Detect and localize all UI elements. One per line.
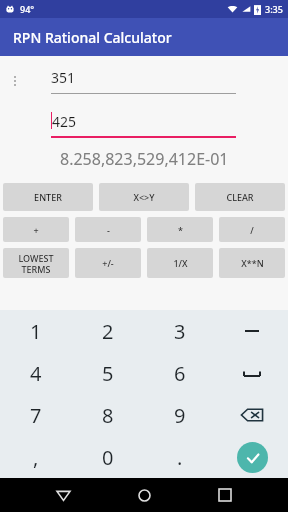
- button[interactable]: 425: [51, 112, 236, 138]
- button[interactable]: Dash: [216, 310, 288, 352]
- button[interactable]: *: [147, 217, 213, 242]
- staticText: 8.258,823,529,412E-01: [60, 148, 229, 170]
- staticText: ENTER: [34, 191, 62, 203]
- staticText: 5: [102, 360, 114, 387]
- staticText: 7: [30, 402, 42, 429]
- button[interactable]: +: [3, 217, 69, 242]
- staticText: ,: [33, 444, 39, 471]
- staticText: 1/X: [173, 257, 188, 269]
- staticText: 6: [174, 360, 186, 387]
- button[interactable]: Recents: [207, 478, 243, 512]
- staticText: .: [177, 444, 183, 471]
- staticText: 94°: [20, 3, 35, 15]
- button[interactable]: 4: [0, 352, 72, 394]
- staticText: 1: [30, 318, 42, 345]
- button[interactable]: 1: [0, 310, 72, 352]
- staticText: +: [33, 224, 39, 236]
- staticText: RPN Rational Calculator: [13, 28, 172, 47]
- button[interactable]: +/-: [75, 248, 141, 278]
- staticText: 9: [174, 402, 186, 429]
- button[interactable]: 0: [72, 436, 144, 478]
- staticText: LOWEST TERMS: [18, 252, 54, 275]
- button[interactable]: X<>Y: [99, 183, 189, 211]
- button[interactable]: 1/X: [147, 248, 213, 278]
- staticText: 0: [102, 444, 114, 471]
- staticText: 3: [174, 318, 186, 345]
- staticText: -: [107, 224, 110, 236]
- staticText: X**N: [241, 257, 264, 269]
- button[interactable]: LOWEST TERMS: [3, 248, 69, 278]
- button[interactable]: ENTER: [3, 183, 93, 211]
- staticText: X<>Y: [133, 191, 155, 203]
- button[interactable]: 7: [0, 394, 72, 436]
- button[interactable]: 5: [72, 352, 144, 394]
- staticText: 4: [30, 360, 42, 387]
- button[interactable]: 3: [144, 310, 216, 352]
- button[interactable]: Backspace: [216, 394, 288, 436]
- button[interactable]: CLEAR: [195, 183, 285, 211]
- staticText: 425: [52, 112, 77, 131]
- staticText: 3:35: [265, 3, 283, 15]
- button[interactable]: .: [144, 436, 216, 478]
- button[interactable]: 2: [72, 310, 144, 352]
- staticText: CLEAR: [226, 191, 254, 203]
- button[interactable]: ,: [0, 436, 72, 478]
- staticText: /: [250, 224, 254, 236]
- button[interactable]: 351: [51, 68, 236, 94]
- button[interactable]: 8: [72, 394, 144, 436]
- staticText: *: [178, 224, 183, 236]
- staticText: +/-: [102, 257, 114, 269]
- staticText: 2: [102, 318, 114, 345]
- button[interactable]: 9: [144, 394, 216, 436]
- button[interactable]: 6: [144, 352, 216, 394]
- staticText: 351: [51, 68, 76, 87]
- button[interactable]: -: [75, 217, 141, 242]
- staticText: 8: [102, 402, 114, 429]
- button[interactable]: X**N: [219, 248, 285, 278]
- button[interactable]: Space: [216, 352, 288, 394]
- button[interactable]: Done: [216, 436, 288, 478]
- button[interactable]: Home: [126, 478, 162, 512]
- button[interactable]: More options: [8, 72, 22, 92]
- button[interactable]: Back: [45, 478, 81, 512]
- button[interactable]: /: [219, 217, 285, 242]
